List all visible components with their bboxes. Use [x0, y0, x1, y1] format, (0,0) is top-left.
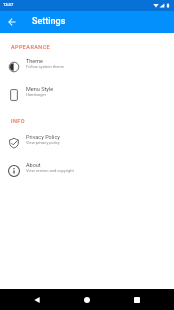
- staticText: Settings: [32, 16, 66, 27]
- staticText: About: [26, 162, 41, 168]
- button[interactable]: Privacy Policy: [0, 129, 174, 157]
- button[interactable]: Theme: [0, 53, 174, 81]
- staticText: 13:37: [3, 2, 14, 7]
- staticText: View version and copyright: [26, 168, 74, 173]
- button[interactable]: About: [0, 157, 174, 185]
- button[interactable]: Recents: [127, 290, 147, 310]
- staticText: Follow system theme: [26, 64, 64, 69]
- staticText: INFO: [11, 118, 25, 124]
- staticText: Menu Style: [26, 86, 54, 92]
- button[interactable]: Back: [1, 11, 23, 33]
- staticText: APPEARANCE: [11, 44, 51, 50]
- staticText: Theme: [26, 58, 43, 64]
- button[interactable]: Menu Style: [0, 81, 174, 109]
- staticText: View privacy policy: [26, 140, 60, 145]
- staticText: Hamburger: [26, 92, 47, 97]
- button[interactable]: Home: [77, 290, 97, 310]
- staticText: Privacy Policy: [26, 134, 60, 140]
- button[interactable]: Back: [27, 290, 47, 310]
